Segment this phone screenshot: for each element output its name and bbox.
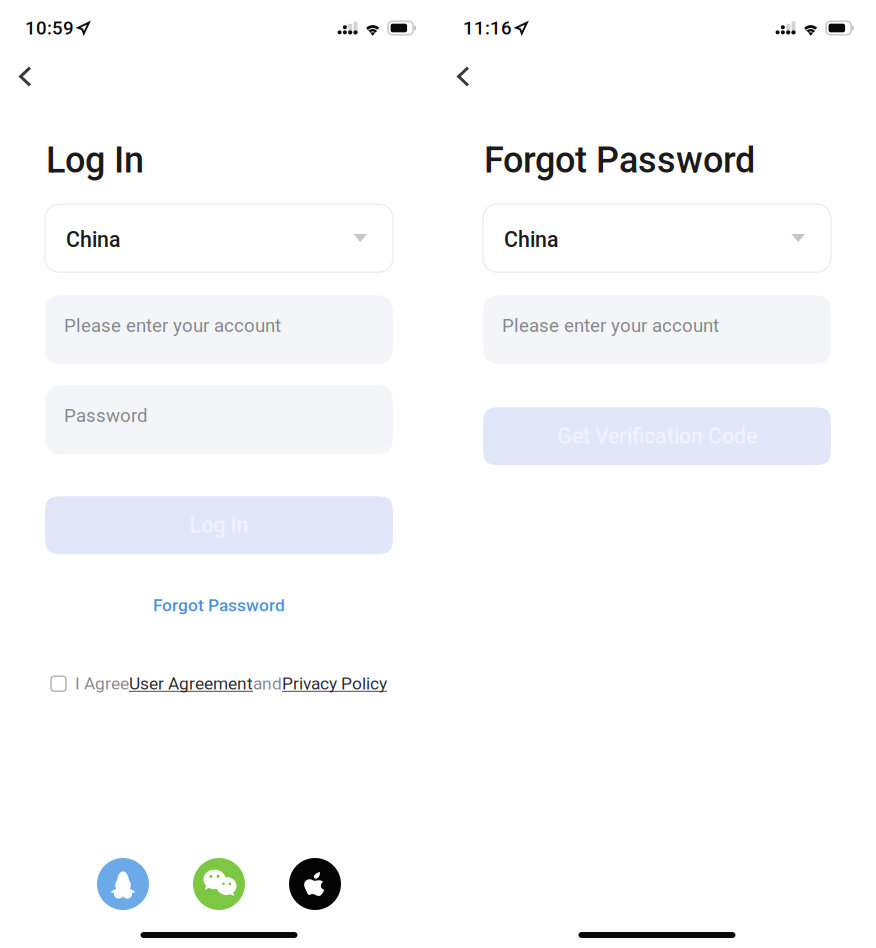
staticText: Privacy Policy xyxy=(282,673,387,694)
button[interactable]: Privacy Policy xyxy=(282,673,387,694)
staticText: China xyxy=(66,227,121,252)
button[interactable]: Back xyxy=(5,37,44,98)
staticText: Forgot Password xyxy=(153,595,285,615)
button[interactable]: Please enter your account xyxy=(483,295,831,364)
button[interactable]: Back xyxy=(443,37,482,98)
button[interactable]: I agree to the terms xyxy=(51,676,66,691)
staticText: Log In xyxy=(189,513,248,538)
staticText: Log In xyxy=(46,139,144,181)
button[interactable]: Please enter your account xyxy=(45,295,393,364)
button[interactable]: User Agreement xyxy=(129,673,253,694)
button[interactable]: Sign in with Apple xyxy=(289,858,341,910)
button[interactable]: China xyxy=(483,204,831,272)
staticText: Please enter your account xyxy=(64,315,281,337)
button[interactable]: Get Verification Code xyxy=(483,407,831,465)
staticText: User Agreement xyxy=(129,673,253,694)
staticText: Forgot Password xyxy=(484,139,755,181)
staticText: Get Verification Code xyxy=(557,424,757,449)
staticText: Please enter your account xyxy=(502,315,719,337)
staticText: I Agree xyxy=(75,673,129,694)
button[interactable]: Forgot Password xyxy=(0,586,438,624)
button[interactable]: Sign in with WeChat xyxy=(193,858,245,910)
button[interactable]: China xyxy=(45,204,393,272)
staticText: Password xyxy=(64,405,148,427)
staticText: China xyxy=(504,227,559,252)
button[interactable]: Password xyxy=(45,385,393,454)
button[interactable]: Sign in with QQ xyxy=(97,858,149,910)
staticText: and xyxy=(253,673,282,694)
staticText: 11:16 xyxy=(463,17,512,39)
staticText: 10:59 xyxy=(25,17,74,39)
